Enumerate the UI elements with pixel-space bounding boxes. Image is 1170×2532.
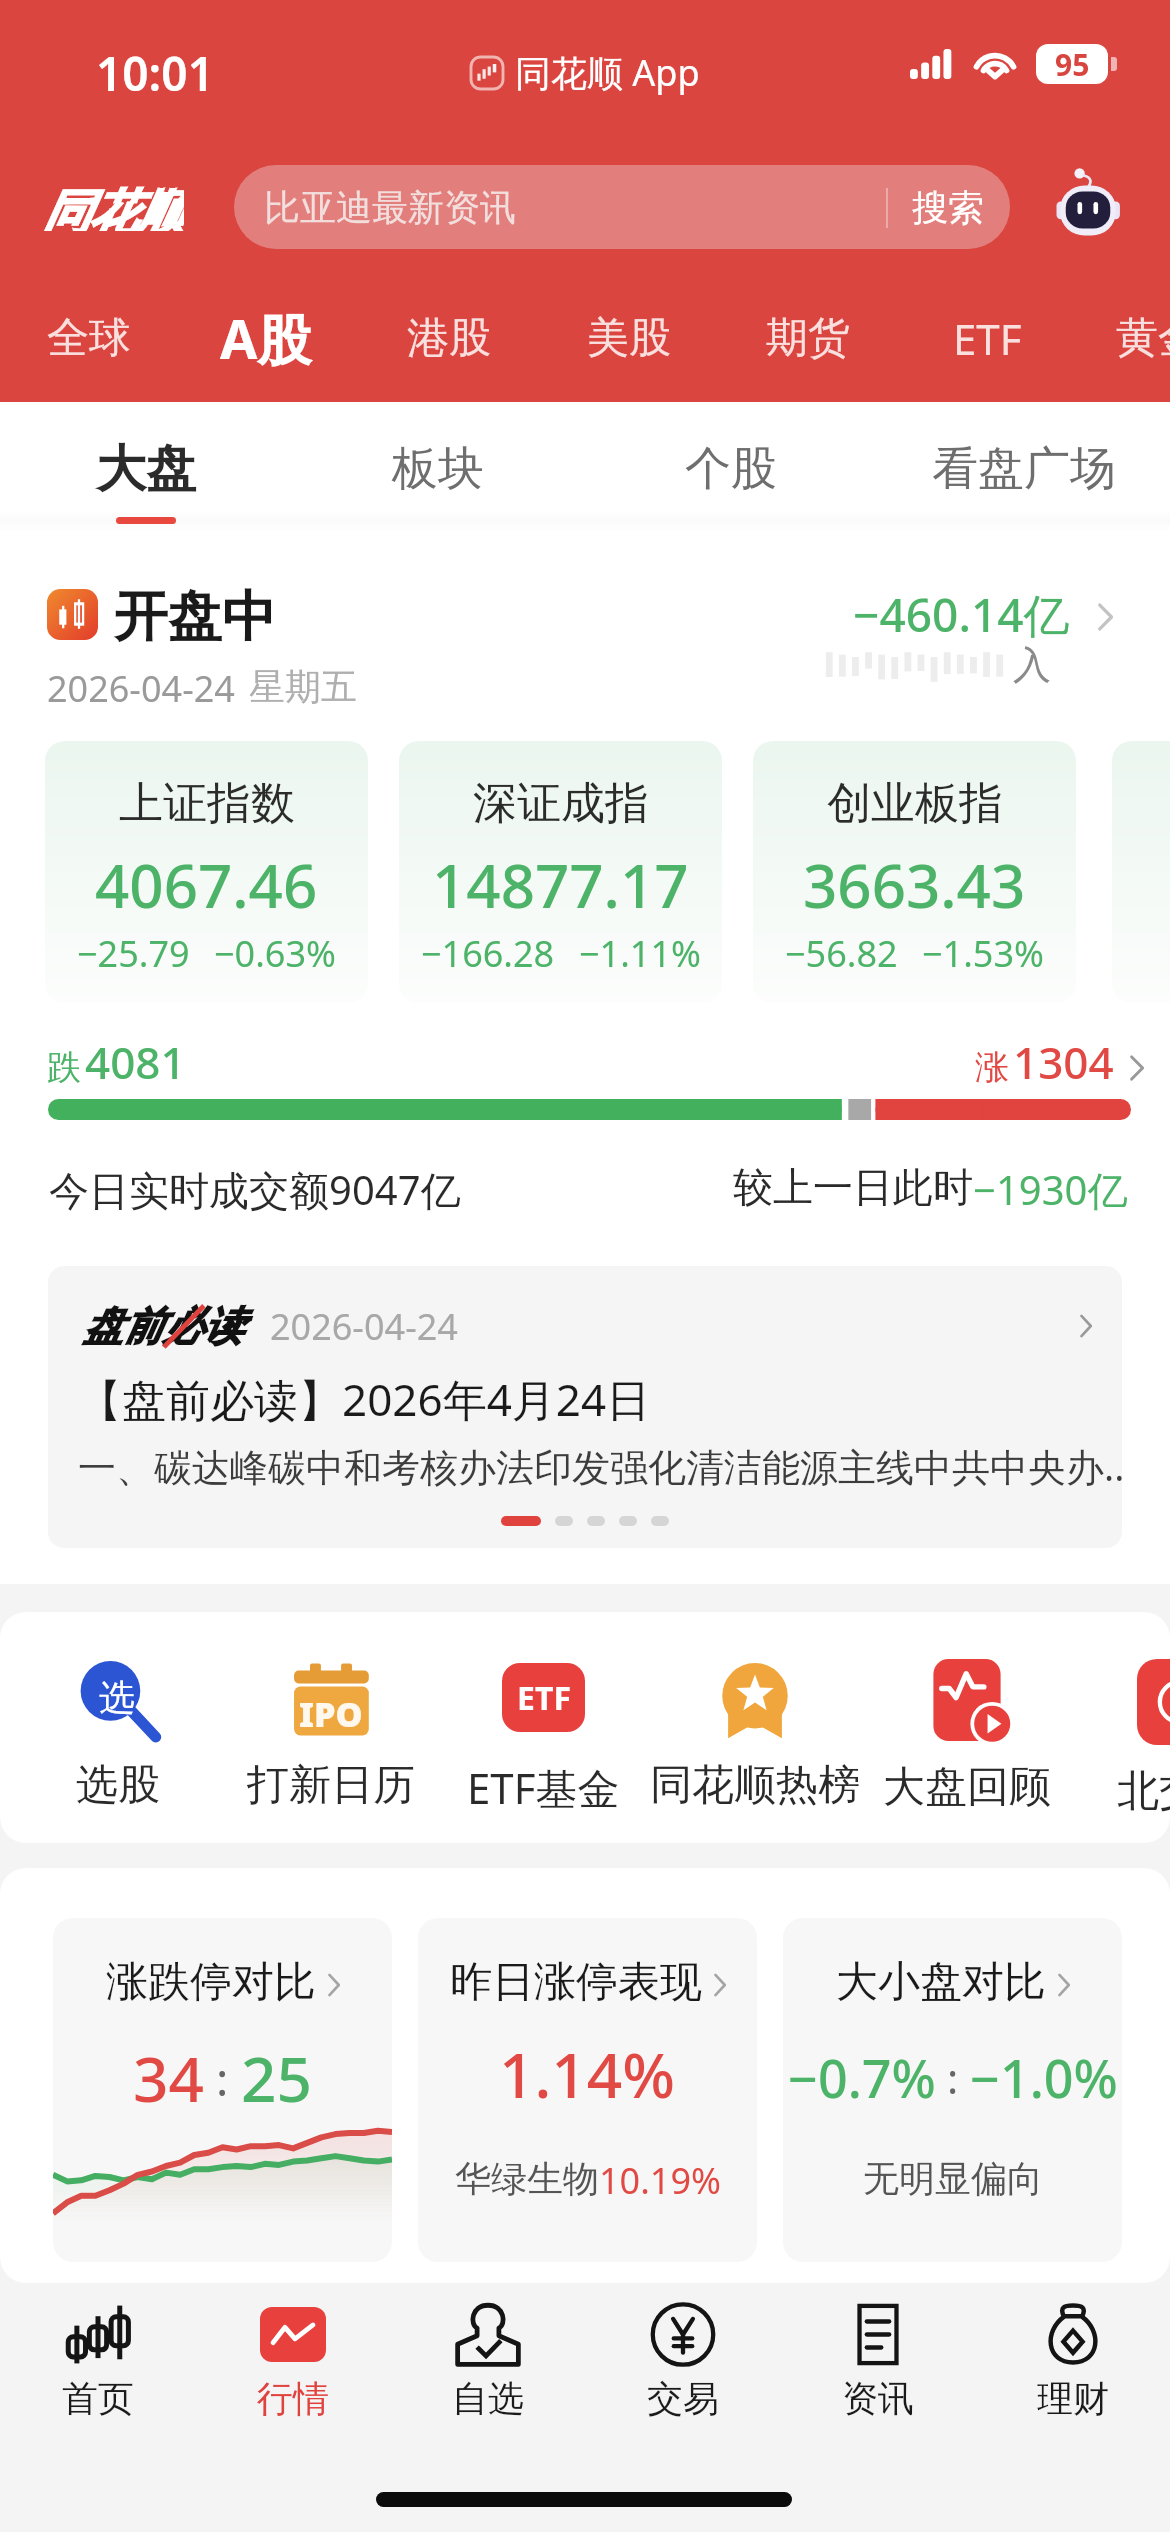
button[interactable]: 行情 bbox=[195, 2283, 390, 2443]
button[interactable]: 期货 bbox=[718, 292, 898, 384]
button[interactable]: 大盘 bbox=[0, 402, 292, 524]
button[interactable]: ETF bbox=[433, 1659, 653, 1816]
staticText: 无明显偏向 bbox=[863, 2156, 1043, 2201]
staticText: 【盘前必读】2026年4月24日 bbox=[78, 1369, 651, 1429]
staticText: 创业板指 bbox=[827, 776, 1003, 831]
staticText: −1.0% bbox=[970, 2042, 1118, 2113]
staticText: A股 bbox=[220, 301, 312, 375]
button[interactable]: 同花顺热榜 bbox=[645, 1659, 865, 1812]
staticText: 盘前必读 bbox=[83, 1301, 243, 1351]
button[interactable] bbox=[1112, 741, 1170, 1003]
button[interactable]: 深证成指 bbox=[399, 741, 722, 1003]
staticText: 资讯 bbox=[842, 2376, 914, 2421]
staticText: −0.7% bbox=[788, 2042, 936, 2113]
button[interactable]: 资讯 bbox=[780, 2283, 975, 2443]
staticText: 大盘回顾 bbox=[883, 1761, 1051, 1814]
staticText: 北交所 bbox=[1117, 1765, 1170, 1818]
button[interactable]: 交易 bbox=[585, 2283, 780, 2443]
staticText: 25 bbox=[241, 2036, 312, 2120]
staticText: ETF bbox=[517, 1676, 571, 1720]
staticText: 选股 bbox=[76, 1759, 160, 1812]
staticText: −1.53% bbox=[922, 929, 1044, 978]
button[interactable]: 看盘广场 bbox=[877, 402, 1170, 524]
staticText: 一、碳达峰碳中和考核办法印发强化清洁能源主线中共中央办... bbox=[78, 1440, 1122, 1492]
staticText: 自选 bbox=[452, 2376, 524, 2421]
button[interactable]: ETF bbox=[897, 292, 1077, 384]
staticText: 理财 bbox=[1037, 2376, 1109, 2421]
staticText: 10:01 bbox=[96, 42, 214, 105]
staticText: 选 bbox=[99, 1675, 135, 1720]
staticText: 4067.46 bbox=[95, 844, 318, 926]
staticText: 95 bbox=[1055, 44, 1090, 84]
staticText: −25.79 bbox=[77, 929, 190, 978]
button[interactable]: 黄金 bbox=[1068, 292, 1170, 384]
staticText: −1.11% bbox=[579, 929, 701, 978]
button[interactable]: 板块 bbox=[292, 402, 584, 524]
button[interactable]: 全球 bbox=[0, 292, 179, 384]
staticText: 美股 bbox=[587, 312, 671, 365]
button[interactable]: 个股 bbox=[584, 402, 877, 524]
button[interactable]: 首页 bbox=[0, 2283, 195, 2443]
button[interactable]: 创业板指 bbox=[753, 741, 1076, 1003]
staticText: 全球 bbox=[47, 312, 131, 365]
staticText: 2026-04-24 bbox=[47, 664, 235, 713]
button[interactable]: 港股 bbox=[359, 292, 539, 384]
staticText: 同花顺热榜 bbox=[650, 1759, 860, 1812]
staticText: −1930亿 bbox=[973, 1162, 1128, 1217]
staticText: 10.19% bbox=[599, 2156, 721, 2205]
button[interactable]: 大小盘对比 bbox=[783, 1918, 1122, 2262]
staticText: 板块 bbox=[392, 440, 484, 498]
staticText: : bbox=[204, 2047, 241, 2110]
staticText: 上证指数 bbox=[119, 776, 295, 831]
staticText: 34 bbox=[133, 2036, 204, 2120]
staticText: 今日实时成交额9047亿 bbox=[49, 1162, 461, 1217]
staticText: 大盘 bbox=[96, 438, 196, 501]
staticText: 开盘中 bbox=[114, 583, 276, 651]
staticText: 入 bbox=[1013, 641, 1051, 689]
staticText: −460.14亿 bbox=[853, 583, 1070, 646]
staticText: 搜索 bbox=[912, 185, 984, 230]
button[interactable]: AI 助手 bbox=[1046, 165, 1130, 249]
staticText: 华绿生物 bbox=[455, 2156, 599, 2201]
staticText: 交易 bbox=[647, 2376, 719, 2421]
button[interactable]: 北交所 bbox=[1070, 1659, 1170, 1818]
button[interactable]: 上证指数 bbox=[45, 741, 368, 1003]
button[interactable]: 美股 bbox=[539, 292, 719, 384]
button[interactable]: 涨跌停对比 bbox=[53, 1918, 392, 2262]
button[interactable]: 盘前必读 bbox=[48, 1266, 1122, 1548]
button[interactable]: 大盘回顾 bbox=[857, 1659, 1077, 1814]
staticText: −166.28 bbox=[421, 929, 555, 978]
staticText: 港股 bbox=[407, 312, 491, 365]
button[interactable]: 自选 bbox=[390, 2283, 585, 2443]
staticText: ETF基金 bbox=[467, 1759, 620, 1816]
staticText: 涨跌停对比 bbox=[106, 1956, 316, 2009]
staticText: 打新日历 bbox=[247, 1759, 415, 1812]
staticText: −56.82 bbox=[785, 929, 898, 978]
button[interactable]: IPO bbox=[221, 1659, 441, 1812]
staticText: 同花顺 App bbox=[515, 48, 700, 97]
staticText: 深证成指 bbox=[473, 776, 649, 831]
staticText: 昨日涨停表现 bbox=[450, 1956, 702, 2009]
button[interactable]: A股 bbox=[176, 292, 356, 384]
button[interactable]: 理财 bbox=[975, 2283, 1170, 2443]
staticText: 比亚迪最新资讯 bbox=[264, 185, 516, 230]
staticText: 涨 bbox=[975, 1046, 1009, 1089]
staticText: 4081 bbox=[85, 1032, 186, 1092]
staticText: ETF bbox=[953, 310, 1022, 367]
button[interactable]: 比亚迪最新资讯 bbox=[234, 165, 1010, 249]
button[interactable]: 昨日涨停表现 bbox=[418, 1918, 757, 2262]
staticText: IPO bbox=[299, 1691, 363, 1731]
button[interactable]: 选 bbox=[8, 1659, 228, 1812]
staticText: 跌 bbox=[47, 1046, 81, 1089]
staticText: 14877.17 bbox=[432, 844, 689, 926]
staticText: 1.14% bbox=[499, 2032, 676, 2116]
staticText: 2026-04-24 bbox=[270, 1302, 458, 1351]
staticText: −0.63% bbox=[214, 929, 336, 978]
staticText: : bbox=[936, 2049, 970, 2106]
staticText: 大小盘对比 bbox=[836, 1956, 1046, 2009]
staticText: 行情 bbox=[257, 2376, 329, 2421]
staticText: 看盘广场 bbox=[932, 440, 1116, 498]
staticText: 3663.43 bbox=[803, 844, 1026, 926]
staticText: 首页 bbox=[62, 2376, 134, 2421]
staticText: 较上一日此时 bbox=[733, 1162, 973, 1212]
